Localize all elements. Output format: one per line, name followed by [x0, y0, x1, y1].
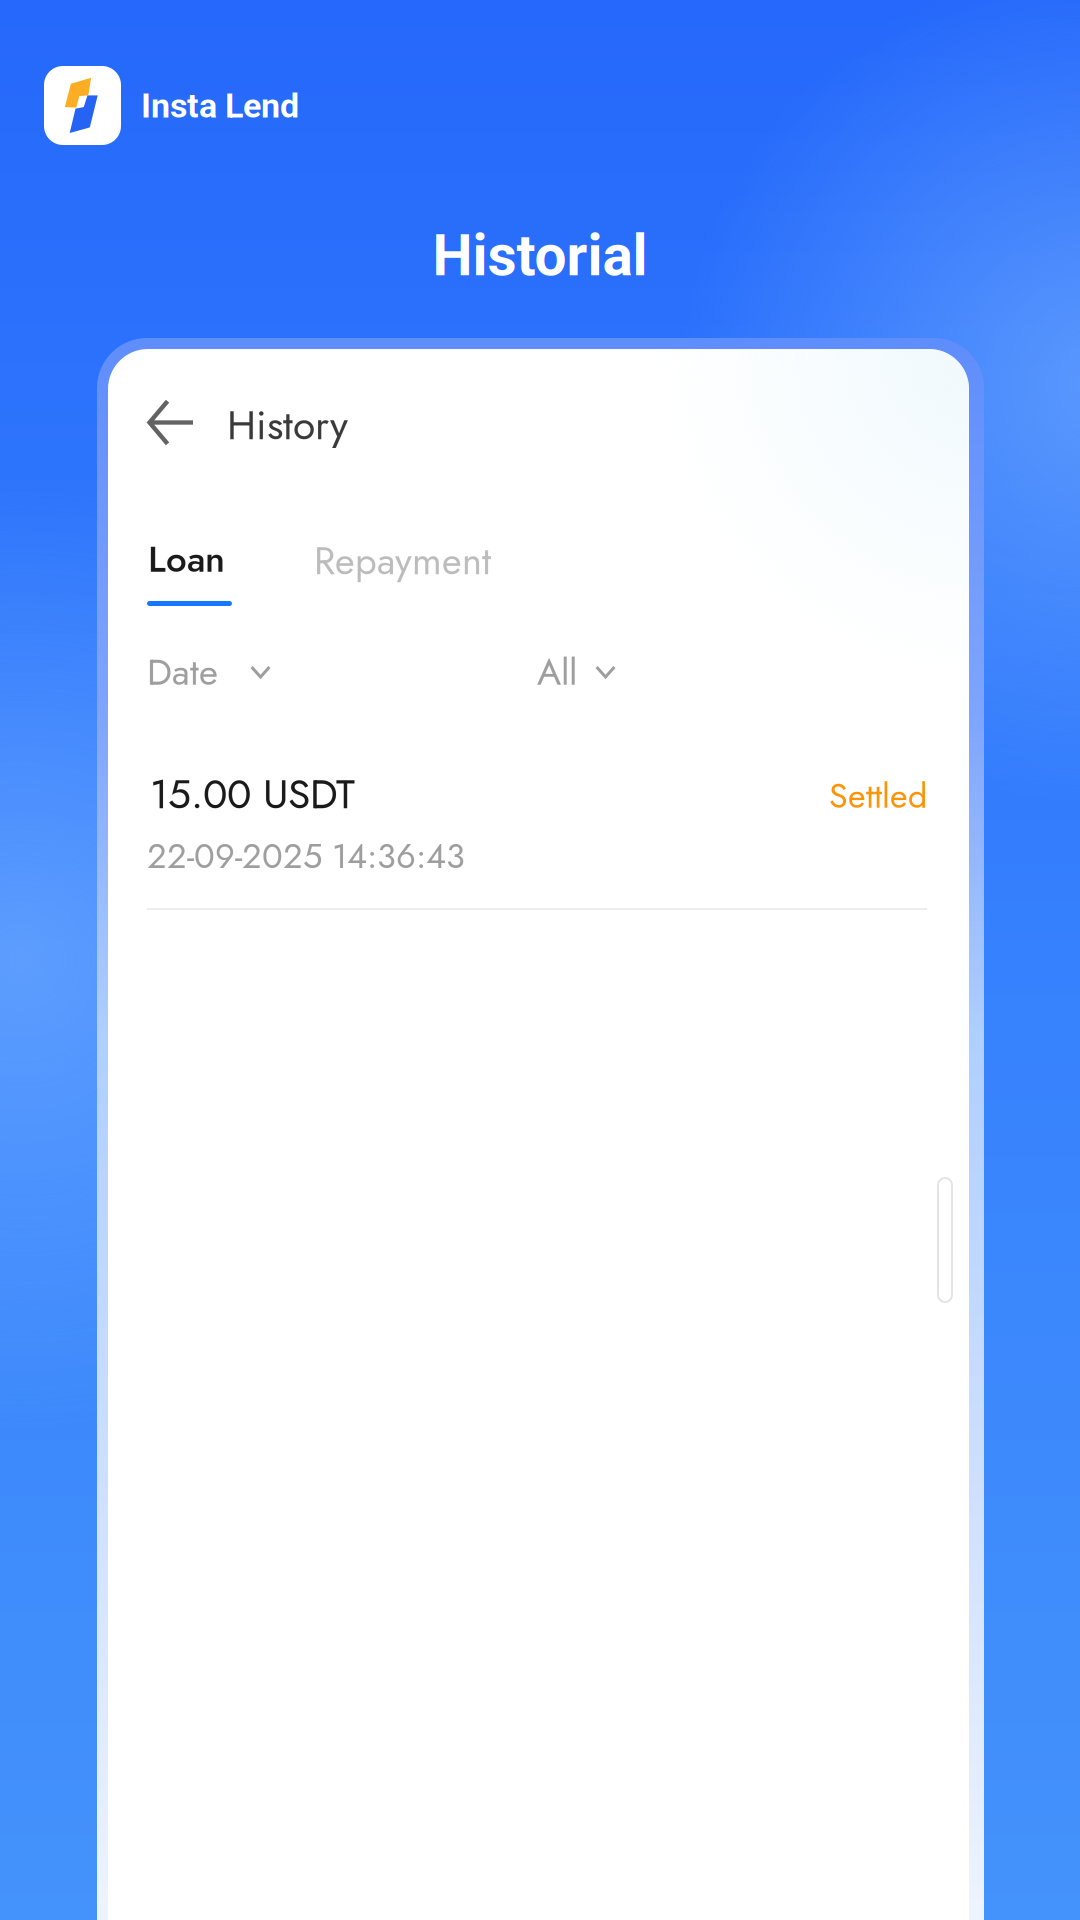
staticText: Settled	[829, 771, 927, 820]
staticText: 15.00 USDT	[150, 765, 355, 823]
staticText: 22-09-2025 14:36:43	[147, 831, 465, 881]
staticText: Historial	[432, 223, 647, 289]
button[interactable]: All	[537, 653, 667, 697]
button[interactable]: Date	[147, 653, 317, 697]
button[interactable]: Insta Lend	[44, 66, 424, 145]
staticText: All	[537, 645, 577, 698]
button[interactable]: Repayment	[314, 540, 554, 596]
staticText: Loan	[148, 532, 225, 585]
staticText: Insta Lend	[141, 86, 299, 126]
button[interactable]: History	[147, 394, 577, 458]
staticText: Date	[147, 645, 218, 698]
staticText: Repayment	[314, 533, 491, 588]
staticText: History	[227, 396, 348, 454]
button[interactable]: 15.00 USDT	[147, 774, 927, 910]
button[interactable]: Loan	[147, 534, 287, 612]
